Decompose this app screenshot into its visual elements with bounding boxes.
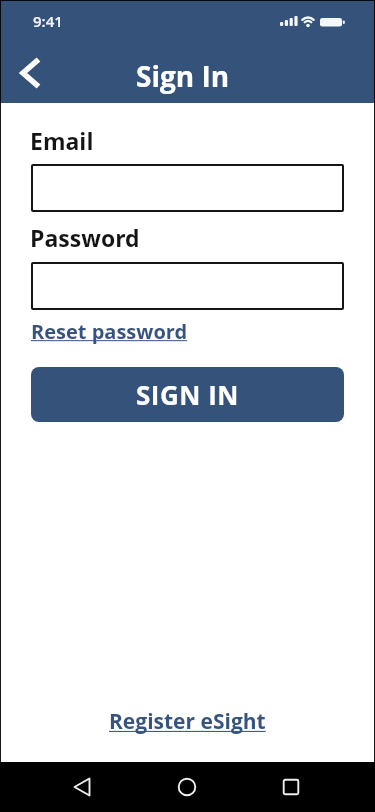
button[interactable] [8, 50, 52, 94]
button[interactable] [31, 164, 344, 212]
button[interactable]: Reset password [31, 318, 188, 345]
staticText: Password [30, 222, 140, 253]
button[interactable] [250, 762, 375, 812]
button[interactable]: SIGN IN [31, 367, 344, 422]
staticText: Email [30, 125, 94, 156]
staticText: Reset password [31, 318, 188, 345]
button[interactable] [125, 762, 250, 812]
staticText: 9:41 [33, 11, 63, 31]
button[interactable] [31, 262, 344, 310]
button[interactable] [0, 762, 125, 812]
staticText: Sign In [136, 57, 230, 95]
button[interactable]: Register eSight [109, 707, 266, 736]
staticText: Register eSight [109, 707, 266, 736]
staticText: SIGN IN [136, 377, 239, 412]
